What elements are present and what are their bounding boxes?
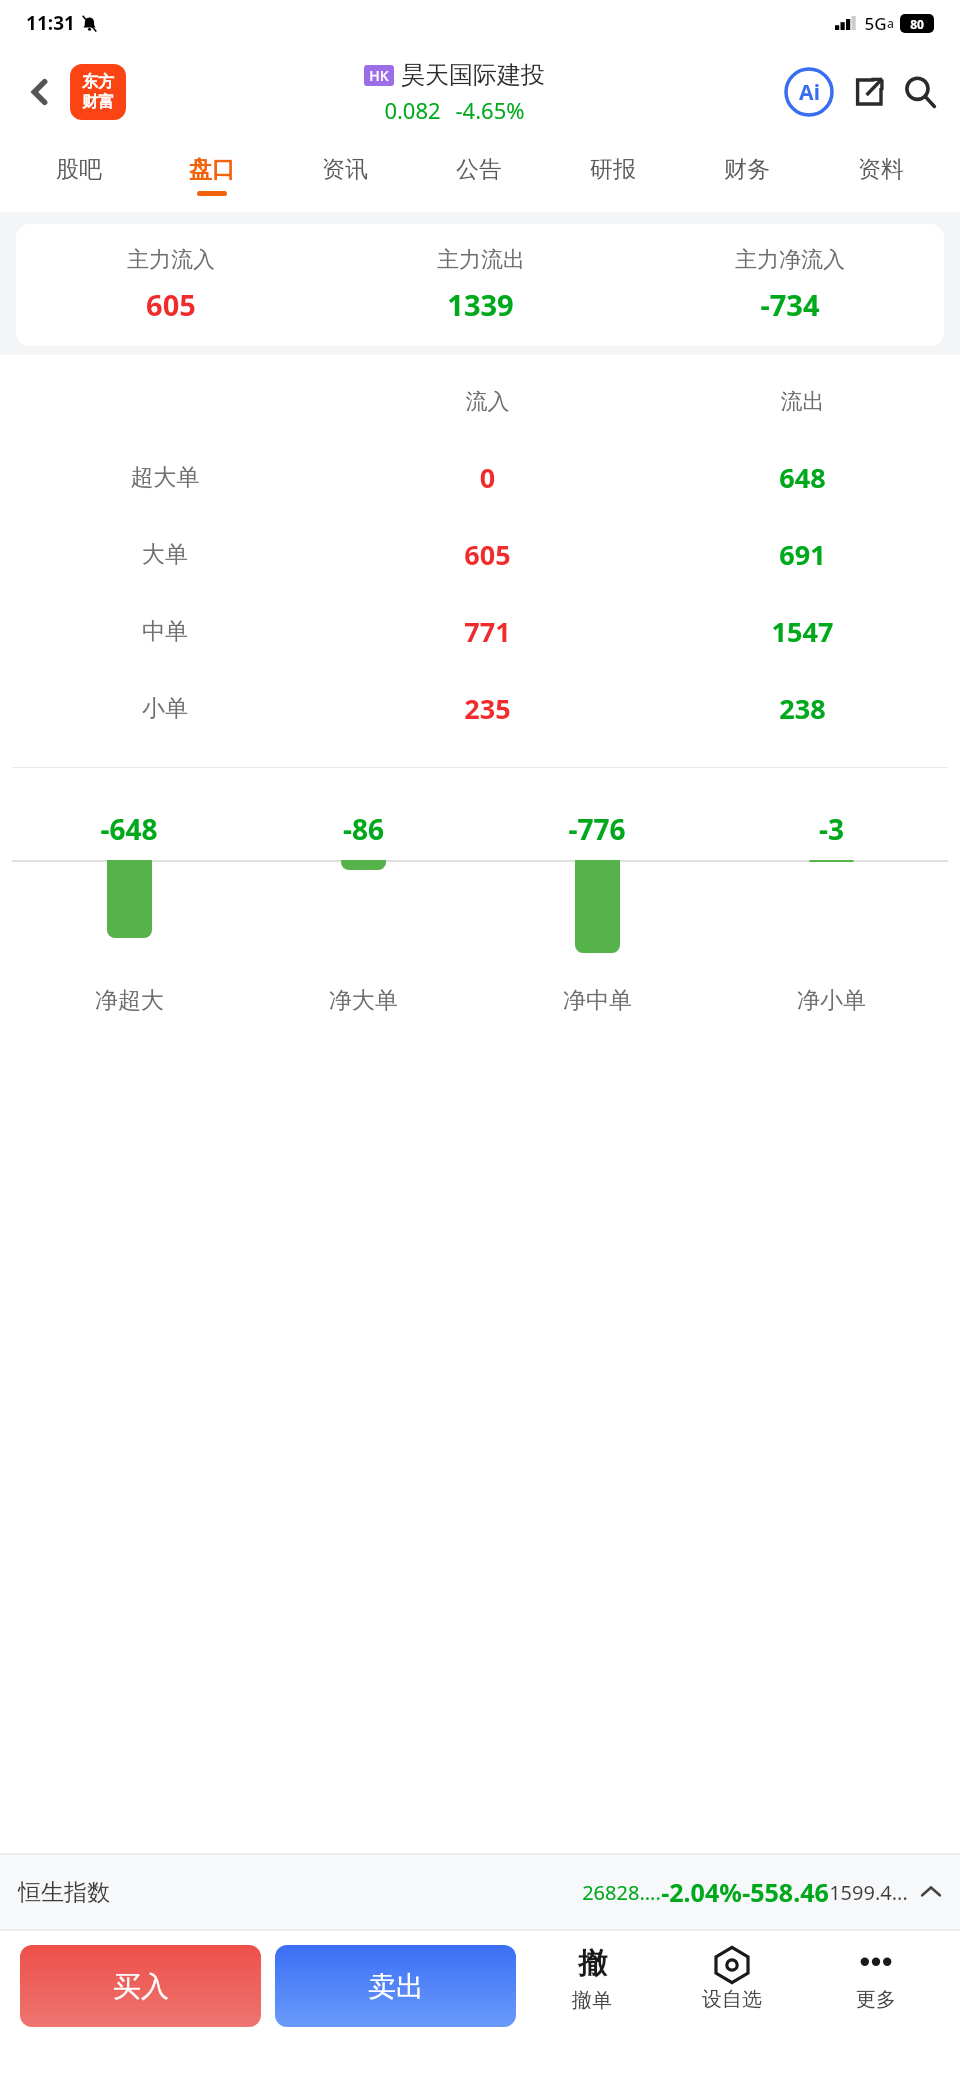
button[interactable]: 小单 [0, 670, 960, 747]
staticText: 资料 [858, 155, 904, 184]
button[interactable]: 买入 [20, 1945, 261, 2027]
staticText: 设自选 [702, 1987, 762, 2012]
button[interactable]: 股吧 [12, 138, 145, 212]
staticText: 净小单 [797, 986, 866, 1015]
staticText: -734 [760, 285, 820, 324]
staticText: -776 [568, 810, 626, 848]
button[interactable]: East Money [70, 64, 126, 120]
button[interactable]: Share [846, 69, 892, 115]
staticText: 中单 [0, 617, 330, 646]
staticText: 净中单 [563, 986, 632, 1015]
staticText: 1599.4... [829, 1879, 908, 1906]
staticText: -86 [343, 810, 384, 848]
staticText: 235 [330, 690, 645, 727]
button[interactable]: 撤 [526, 1945, 658, 2013]
staticText: 撤 [578, 1945, 607, 1982]
staticText: 东方 [82, 72, 114, 92]
staticText: 11:31 [26, 10, 75, 36]
staticText: -4.65% [455, 95, 525, 125]
staticText: 净大单 [329, 986, 398, 1015]
staticText: 691 [645, 536, 960, 573]
staticText: 605 [146, 285, 196, 324]
staticText: 80 [910, 16, 924, 32]
staticText: 1547 [645, 613, 960, 650]
button[interactable]: 财务 [680, 138, 814, 212]
button[interactable]: 设自选 [658, 1945, 806, 2012]
staticText: 公告 [456, 155, 502, 184]
staticText: a [887, 15, 894, 31]
button[interactable]: 公告 [412, 138, 546, 212]
staticText: 大单 [0, 540, 330, 569]
staticText: 5G [864, 12, 887, 35]
staticText: 昊天国际建投 [401, 60, 545, 90]
staticText: 主力流入 [127, 246, 215, 274]
staticText: 主力流出 [437, 246, 525, 274]
staticText: 恒生指数 [18, 1878, 110, 1907]
staticText: 1339 [447, 285, 514, 324]
staticText: 更多 [856, 1987, 896, 2012]
staticText: 605 [330, 536, 645, 573]
staticText: 研报 [590, 155, 636, 184]
staticText: HK [369, 66, 389, 85]
button[interactable]: 资讯 [278, 138, 412, 212]
staticText: 财富 [82, 92, 114, 112]
staticText: 771 [330, 613, 645, 650]
staticText: 0.082 [384, 95, 441, 125]
button[interactable]: 主力流入 [16, 246, 944, 324]
staticText: 净超大 [95, 986, 164, 1015]
button[interactable]: 中单 [0, 593, 960, 670]
button[interactable]: 恒生指数 [18, 1855, 942, 1929]
staticText: 26828.... [582, 1879, 661, 1906]
staticText: -558.46 [742, 1875, 829, 1909]
button[interactable]: 超大单 [0, 439, 960, 516]
button[interactable]: 研报 [546, 138, 680, 212]
button[interactable]: 卖出 [275, 1945, 516, 2027]
other: Expand [920, 1881, 942, 1903]
staticText: -3 [819, 810, 844, 848]
button[interactable]: 大单 [0, 516, 960, 593]
button[interactable]: 更多 [806, 1945, 946, 2012]
staticText: 主力净流入 [735, 246, 845, 274]
staticText: 资讯 [322, 155, 368, 184]
staticText: 卖出 [368, 1969, 424, 2004]
staticText: 股吧 [56, 155, 102, 184]
button[interactable]: 资料 [814, 138, 948, 212]
staticText: 财务 [724, 155, 770, 184]
staticText: 盘口 [189, 155, 235, 184]
staticText: 超大单 [0, 463, 330, 492]
staticText: -648 [100, 810, 158, 848]
button[interactable]: 盘口 [145, 138, 278, 212]
staticText: 648 [645, 459, 960, 496]
staticText: 流入 [330, 388, 645, 416]
staticText: 238 [645, 690, 960, 727]
staticText: Ai [799, 78, 820, 107]
staticText: 小单 [0, 694, 330, 723]
button[interactable]: Search [896, 68, 944, 116]
button[interactable]: Back [16, 68, 64, 116]
button[interactable]: AI assistant [782, 65, 836, 119]
staticText: 0 [330, 459, 645, 496]
staticText: 撤单 [572, 1988, 612, 2013]
staticText: 买入 [113, 1969, 169, 2004]
staticText: -2.04% [661, 1875, 742, 1909]
staticText: 流出 [645, 388, 960, 416]
